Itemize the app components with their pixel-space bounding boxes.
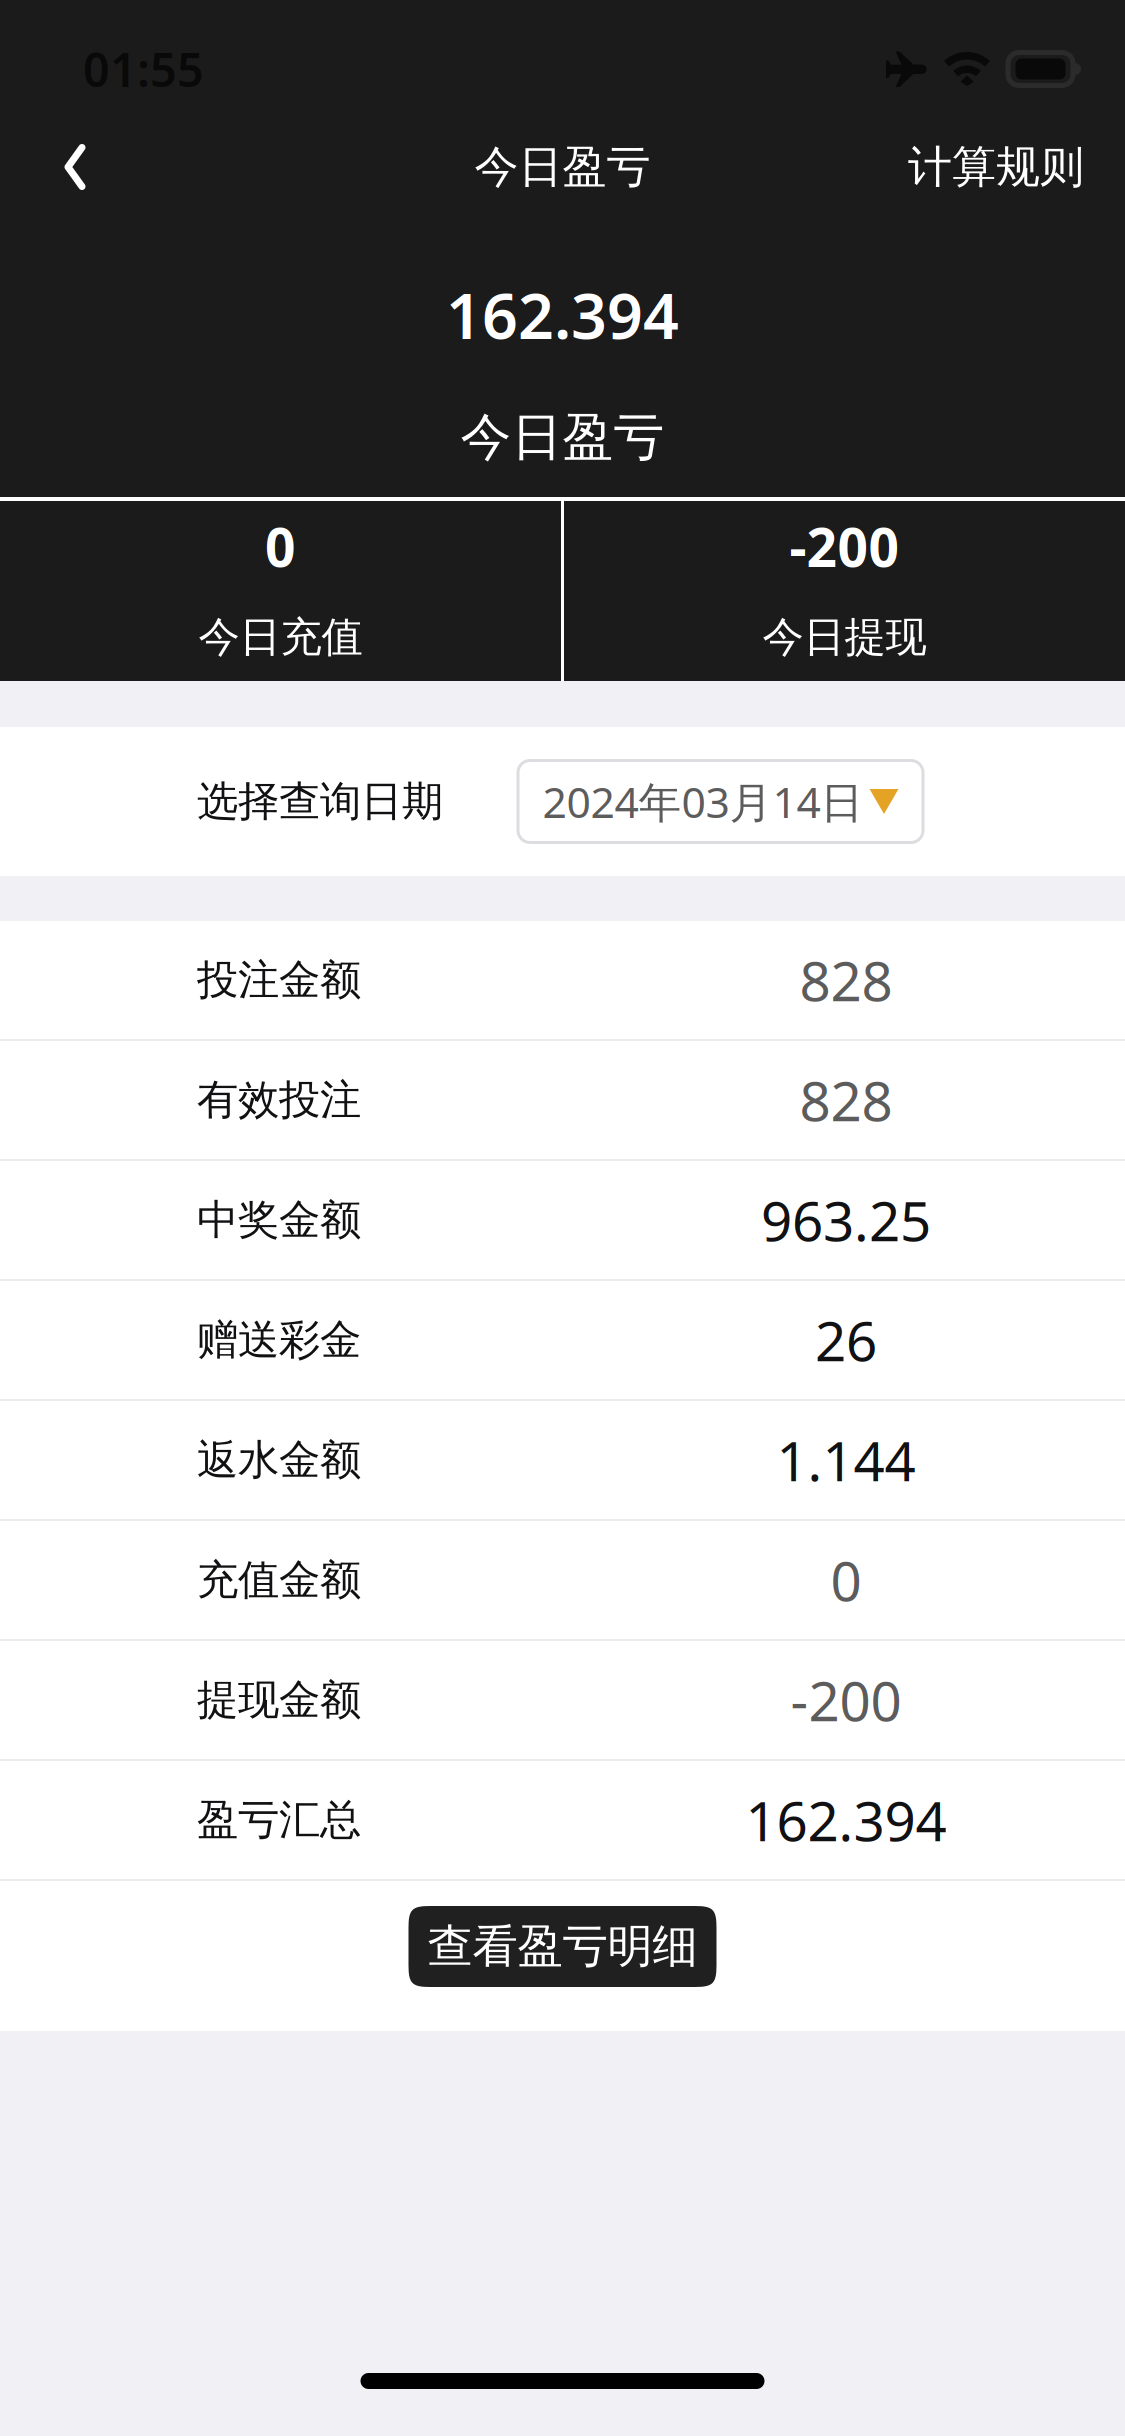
staticText: 01:55	[83, 38, 204, 100]
staticText: 返水金额	[197, 1435, 361, 1485]
staticText: 今日充值	[198, 612, 362, 663]
staticText: 828	[799, 1064, 892, 1136]
staticText: 828	[799, 944, 892, 1016]
staticText: 今日提现	[762, 612, 926, 663]
button[interactable]: 计算规则	[908, 124, 1084, 210]
staticText: 162.394	[446, 273, 679, 356]
staticText: 选择查询日期	[197, 776, 443, 827]
staticText: 提现金额	[197, 1675, 361, 1725]
staticText: 中奖金额	[197, 1195, 361, 1245]
staticText: 162.394	[745, 1784, 946, 1856]
staticText: 查看盈亏明细	[427, 1919, 697, 1974]
button[interactable]: 2024年03月14日	[518, 760, 923, 842]
staticText: -200	[789, 511, 899, 582]
staticText: 0	[265, 511, 296, 582]
staticText: 2024年03月14日	[542, 773, 863, 830]
staticText: -200	[790, 1664, 901, 1736]
staticText: 投注金额	[197, 955, 361, 1005]
staticText: 26	[815, 1304, 877, 1376]
staticText: 充值金额	[197, 1555, 361, 1605]
button[interactable]: Back	[25, 124, 125, 210]
staticText: 0	[830, 1544, 861, 1616]
staticText: 963.25	[761, 1184, 931, 1256]
staticText: 1.144	[776, 1424, 915, 1496]
staticText: 有效投注	[197, 1075, 361, 1125]
staticText: 赠送彩金	[197, 1315, 361, 1365]
staticText: 计算规则	[908, 140, 1084, 194]
button[interactable]: 查看盈亏明细	[408, 1906, 716, 1987]
staticText: 盈亏汇总	[197, 1795, 361, 1845]
staticText: 今日盈亏	[474, 140, 650, 194]
staticText: 今日盈亏	[460, 406, 664, 468]
